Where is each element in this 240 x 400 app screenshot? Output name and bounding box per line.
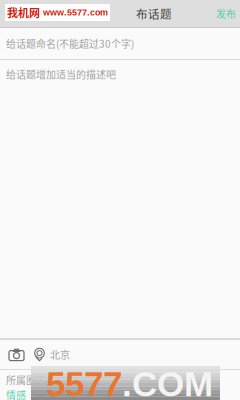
staticText: .COM [122,364,213,400]
button[interactable]: 情感 [6,388,26,400]
button[interactable]: 发布 [212,0,240,27]
staticText: 我机网 [7,4,40,20]
button[interactable]: 北京 [32,340,72,369]
staticText: www.5577.com [43,7,108,18]
staticText: 给话题增加适当的描述吧 [6,67,116,81]
staticText: 北京 [50,347,70,362]
button[interactable]: 添加图片 [0,340,32,369]
staticText: 生活 [36,388,56,400]
staticText: 给话题命名(不能超过30个字) [6,36,134,51]
staticText: 所属圈子 [6,373,46,387]
button[interactable]: 生活 [36,388,56,400]
staticText: 情感 [6,388,26,400]
button[interactable]: 给话题命名(不能超过30个字) [0,28,240,59]
staticText: 布话题 [136,5,172,22]
staticText: 5577 [46,364,122,400]
button[interactable]: 给话题增加适当的描述吧 [0,60,240,338]
staticText: 发布 [216,6,236,21]
